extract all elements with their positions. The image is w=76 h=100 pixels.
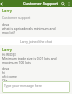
staticText: what is apricaderals minimum and	[2, 26, 56, 30]
staticText: ofci come	[2, 74, 17, 78]
staticText: dcva	[2, 22, 10, 26]
button[interactable]: Type your message here	[2, 81, 70, 93]
staticText: Larry	[2, 8, 12, 13]
staticText: Larry	[2, 47, 12, 52]
button[interactable]: Back	[0, 0, 5, 7]
staticText: Customer support	[2, 15, 31, 19]
staticText: Type your message here	[4, 83, 42, 87]
staticText: Customer Support	[23, 1, 59, 6]
staticText: maximum 100 lots	[2, 60, 31, 64]
button[interactable]: Search	[60, 1, 66, 7]
staticText: max lot?	[2, 30, 15, 34]
staticText: dcva	[2, 66, 10, 70]
staticText: Hi REDIJI	[2, 52, 16, 56]
staticText: Minimum trade size is 0.01 lots and	[2, 56, 57, 60]
staticText: Larry joined the chat	[20, 39, 52, 43]
staticText: hi	[2, 70, 5, 74]
button[interactable]: More options	[66, 1, 72, 7]
staticText: Ola	[2, 78, 8, 81]
